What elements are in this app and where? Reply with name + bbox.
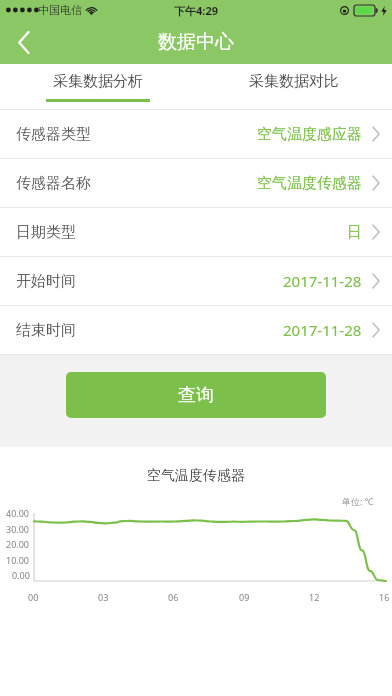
staticText: 2017-11-28 xyxy=(283,320,362,340)
staticText: 单位: ℃ xyxy=(342,495,374,507)
button[interactable]: Back xyxy=(0,20,48,64)
staticText: 20.00 xyxy=(6,538,30,550)
staticText: 40.00 xyxy=(6,507,30,519)
staticText: 00 xyxy=(28,591,39,603)
staticText: 12 xyxy=(309,591,320,603)
staticText: 30.00 xyxy=(6,523,30,535)
staticText: 2017-11-28 xyxy=(283,271,362,291)
button[interactable]: 开始时间 xyxy=(0,257,392,305)
button[interactable]: 传感器名称 xyxy=(0,159,392,207)
button[interactable]: 采集数据分析 xyxy=(0,64,196,110)
button[interactable]: 传感器类型 xyxy=(0,110,392,158)
staticText: 开始时间 xyxy=(16,272,76,291)
staticText: 传感器类型 xyxy=(16,125,91,144)
button[interactable]: 日期类型 xyxy=(0,208,392,256)
staticText: 0.00 xyxy=(12,569,30,581)
staticText: 10.00 xyxy=(6,554,30,566)
staticText: 中国电信 xyxy=(38,3,82,17)
staticText: 数据中心 xyxy=(158,30,234,54)
staticText: 06 xyxy=(168,591,179,603)
staticText: 下午4:29 xyxy=(174,3,218,18)
staticText: 空气温度感应器 xyxy=(257,125,362,144)
staticText: 空气温度传感器 xyxy=(257,174,362,193)
staticText: 传感器名称 xyxy=(16,174,91,193)
staticText: 空气温度传感器 xyxy=(147,467,245,485)
staticText: 03 xyxy=(98,591,109,603)
staticText: 日 xyxy=(347,223,362,242)
staticText: 09 xyxy=(239,591,250,603)
button[interactable]: 查询 xyxy=(66,372,326,418)
staticText: 结束时间 xyxy=(16,321,76,340)
staticText: 16 xyxy=(379,591,390,603)
button[interactable]: 结束时间 xyxy=(0,306,392,354)
staticText: 日期类型 xyxy=(16,223,76,242)
staticText: 采集数据分析 xyxy=(53,72,143,91)
button[interactable]: 采集数据对比 xyxy=(196,64,392,110)
staticText: 查询 xyxy=(178,384,214,407)
staticText: 采集数据对比 xyxy=(249,72,339,91)
